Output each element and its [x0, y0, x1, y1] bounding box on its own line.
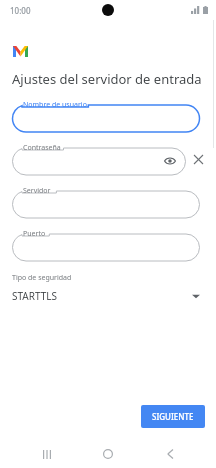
button[interactable]: SIGUIENTE — [141, 405, 205, 428]
staticText: SIGUIENTE — [152, 411, 194, 422]
button[interactable]: Tipo de seguridad — [0, 273, 216, 303]
button[interactable]: Servidor — [12, 186, 200, 218]
button[interactable]: Mostrar contraseña — [160, 151, 180, 171]
staticText: Contraseña — [23, 143, 61, 153]
staticText: STARTTLS — [12, 289, 192, 303]
button[interactable]: Nombre de usuario — [12, 100, 200, 132]
button[interactable]: Atrás — [155, 440, 185, 468]
staticText: 10:00 — [10, 5, 31, 16]
staticText: Nombre de usuario — [23, 100, 87, 110]
button[interactable]: Contraseña — [12, 143, 186, 175]
staticText: Ajustes del servidor de entrada — [12, 70, 202, 88]
staticText: Tipo de seguridad — [12, 273, 72, 283]
staticText: Puerto — [23, 229, 46, 239]
button[interactable]: Puerto — [12, 229, 200, 261]
button[interactable]: Borrar contraseña — [186, 147, 210, 171]
staticText: Servidor — [23, 186, 51, 196]
button[interactable]: Inicio — [93, 440, 123, 468]
button[interactable]: Recientes — [32, 440, 62, 468]
